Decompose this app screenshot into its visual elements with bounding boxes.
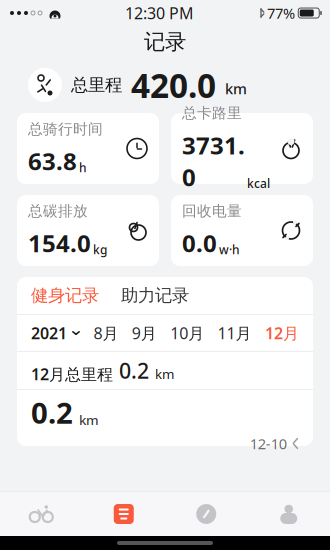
button[interactable]: 0.2 xyxy=(17,390,313,446)
button[interactable]: 记录 xyxy=(82,492,165,536)
staticText: 63.8 xyxy=(28,145,77,177)
button[interactable]: 总碳排放 xyxy=(17,195,159,266)
staticText: 总骑行时间 xyxy=(28,120,103,138)
staticText: 助力记录 xyxy=(121,285,189,306)
staticText: w·h xyxy=(219,241,240,257)
button[interactable]: 回收电量 xyxy=(171,195,313,266)
staticText: 总碳排放 xyxy=(28,202,88,220)
staticText: km xyxy=(79,411,99,429)
button[interactable]: 总卡路里 xyxy=(171,113,313,184)
staticText: 总卡路里 xyxy=(182,104,242,122)
button[interactable]: 8月 xyxy=(93,322,118,344)
staticText: 记录 xyxy=(144,29,186,55)
staticText: 12月总里程 xyxy=(31,363,113,385)
staticText: 健身记录 xyxy=(31,285,99,306)
button[interactable]: 2021 xyxy=(31,322,80,344)
button[interactable]: 发现 xyxy=(165,492,247,536)
button[interactable]: 12月 xyxy=(265,322,299,344)
button[interactable]: 健身记录 xyxy=(31,285,99,306)
staticText: 2021 xyxy=(31,322,67,344)
staticText: 9月 xyxy=(132,322,157,344)
button[interactable]: 我的 xyxy=(247,492,330,536)
button[interactable]: 骑行 xyxy=(0,492,82,536)
staticText: 0.2 xyxy=(119,356,149,385)
staticText: 77% xyxy=(267,3,295,23)
staticText: km xyxy=(225,79,247,98)
staticText: 回收电量 xyxy=(182,202,242,220)
button[interactable]: 助力记录 xyxy=(121,285,189,306)
staticText: km xyxy=(155,365,174,383)
button[interactable]: 总骑行时间 xyxy=(17,113,159,184)
button[interactable]: 10月 xyxy=(170,322,204,344)
staticText: 11月 xyxy=(218,322,252,344)
button[interactable]: 9月 xyxy=(132,322,157,344)
staticText: kg xyxy=(93,241,107,257)
staticText: 8月 xyxy=(93,322,118,344)
staticText: h xyxy=(79,159,87,175)
staticText: 0.2 xyxy=(31,393,73,432)
staticText: 12:30 PM xyxy=(125,2,194,24)
staticText: kcal xyxy=(247,175,270,191)
staticText: 总里程 xyxy=(71,74,122,96)
staticText: 12-10 xyxy=(250,434,287,453)
button[interactable]: 11月 xyxy=(218,322,252,344)
staticText: 154.0 xyxy=(28,227,91,259)
staticText: 3731.0 xyxy=(182,129,245,193)
staticText: 10月 xyxy=(170,322,204,344)
staticText: 420.0 xyxy=(131,63,216,107)
staticText: 12月 xyxy=(265,322,299,344)
staticText: 0.0 xyxy=(182,227,217,259)
